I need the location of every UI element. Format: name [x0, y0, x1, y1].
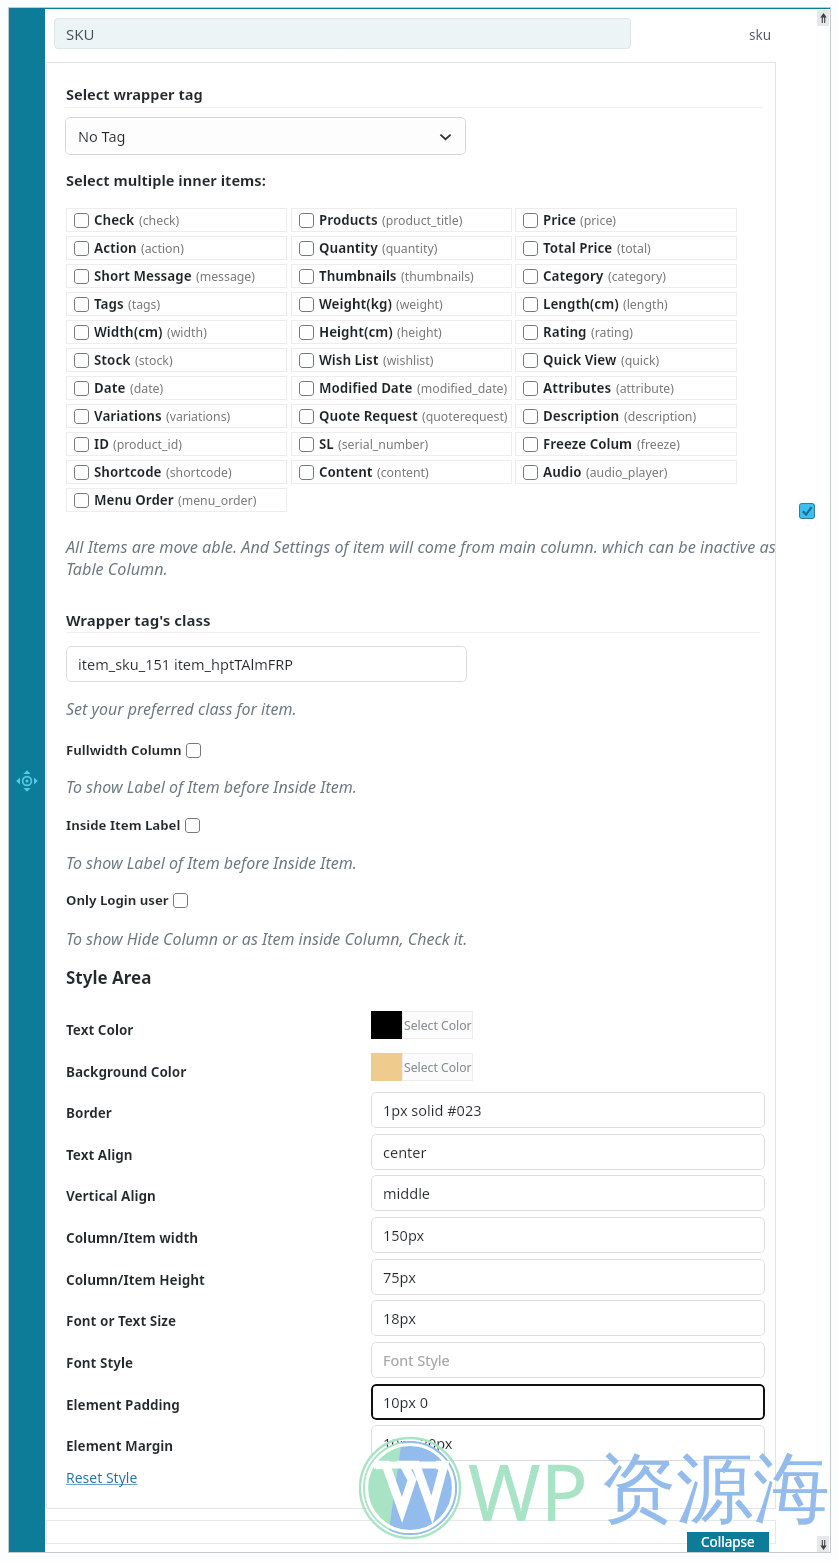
button[interactable]: Checkbox — [74, 493, 89, 508]
button[interactable]: Checkbox — [74, 269, 89, 284]
button[interactable]: Checkbox — [74, 465, 89, 480]
button[interactable]: Checkbox — [291, 460, 512, 484]
button[interactable]: center — [371, 1134, 765, 1170]
button[interactable]: Checkbox — [299, 409, 314, 424]
button[interactable]: Checkbox — [291, 264, 512, 288]
button[interactable]: Checkbox — [74, 381, 89, 396]
button[interactable]: Checkbox — [291, 432, 512, 456]
button[interactable]: SKU — [54, 18, 631, 49]
button[interactable]: Only Login user — [66, 891, 188, 909]
button[interactable]: Collapse — [687, 1532, 769, 1552]
button[interactable]: Checkbox — [523, 409, 538, 424]
button[interactable]: Checkbox — [523, 381, 538, 396]
button[interactable]: Checkbox — [173, 893, 188, 908]
button[interactable]: Checkbox — [74, 325, 89, 340]
button[interactable]: Select Color — [371, 1053, 473, 1081]
button[interactable]: Checkbox — [66, 404, 287, 428]
button[interactable]: Checkbox — [186, 743, 201, 758]
button[interactable]: 10px 0 — [371, 1384, 765, 1420]
button[interactable]: Checkbox — [299, 381, 314, 396]
button[interactable]: Checkbox — [74, 437, 89, 452]
button[interactable]: Checkbox — [515, 264, 737, 288]
button[interactable]: Checkbox — [66, 460, 287, 484]
button[interactable]: Checkbox — [66, 264, 287, 288]
button[interactable]: 18px — [371, 1300, 765, 1336]
button[interactable]: Inside Item Label — [66, 816, 200, 834]
button[interactable]: Checkbox — [299, 325, 314, 340]
button[interactable]: Select Color — [371, 1011, 473, 1039]
button[interactable]: Checkbox — [515, 208, 737, 232]
staticText: (tags) — [128, 296, 161, 313]
staticText: Text Align — [66, 1146, 133, 1164]
button[interactable]: Checkbox — [185, 818, 200, 833]
button[interactable]: Checkbox — [291, 208, 512, 232]
button[interactable]: Checkbox — [74, 409, 89, 424]
button[interactable]: Checkbox — [66, 488, 287, 512]
button[interactable]: Checkbox — [74, 353, 89, 368]
button[interactable]: Checkbox — [523, 213, 538, 228]
button[interactable]: Checkbox — [515, 432, 737, 456]
button[interactable]: Checkbox — [66, 236, 287, 260]
button[interactable]: Checkbox — [74, 241, 89, 256]
button[interactable]: Checkbox — [515, 292, 737, 316]
button[interactable]: Checkbox — [291, 236, 512, 260]
staticText: Shortcode — [94, 463, 162, 481]
button[interactable]: Font Style — [371, 1342, 765, 1378]
button[interactable]: Checkbox — [299, 269, 314, 284]
button[interactable]: 1px solid #023 — [371, 1092, 765, 1128]
button[interactable]: Checkbox — [523, 297, 538, 312]
button[interactable]: item_sku_151 item_hptTAlmFRP — [66, 646, 467, 682]
button[interactable]: Checkbox — [523, 437, 538, 452]
staticText: item_sku_151 item_hptTAlmFRP — [78, 654, 294, 674]
button[interactable]: Checkbox — [515, 348, 737, 372]
button[interactable]: Checkbox — [523, 241, 538, 256]
button[interactable]: 75px — [371, 1259, 765, 1295]
button[interactable]: Checkbox — [523, 325, 538, 340]
button[interactable]: Checkbox — [299, 465, 314, 480]
button[interactable]: Checkbox — [523, 465, 538, 480]
button[interactable]: Checkbox — [66, 320, 287, 344]
button[interactable]: Checkbox — [291, 292, 512, 316]
button[interactable]: Checkbox — [74, 213, 89, 228]
staticText: Category — [543, 267, 604, 285]
button[interactable]: Checkbox — [515, 320, 737, 344]
staticText: Menu Order — [94, 491, 174, 509]
button[interactable]: Checkbox — [515, 376, 737, 400]
button[interactable]: Checkbox — [299, 297, 314, 312]
button[interactable]: Reset Style — [66, 1468, 138, 1487]
button[interactable]: Toggle column — [799, 503, 815, 519]
staticText: 1px solid #023 — [383, 1100, 482, 1120]
staticText: Column/Item Height — [66, 1271, 205, 1289]
button[interactable]: Checkbox — [66, 208, 287, 232]
button[interactable]: No Tag — [65, 117, 466, 155]
button[interactable]: Checkbox — [299, 353, 314, 368]
button[interactable]: Checkbox — [523, 269, 538, 284]
button[interactable]: Checkbox — [515, 404, 737, 428]
button[interactable]: Checkbox — [515, 460, 737, 484]
staticText: Total Price — [543, 239, 613, 257]
staticText: SL — [319, 435, 334, 453]
button[interactable]: Checkbox — [291, 320, 512, 344]
button[interactable]: Scroll to top — [817, 10, 829, 26]
button[interactable]: middle — [371, 1175, 765, 1211]
button[interactable]: Checkbox — [291, 348, 512, 372]
button[interactable]: Checkbox — [515, 236, 737, 260]
staticText: (width) — [167, 324, 207, 341]
button[interactable]: Checkbox — [299, 437, 314, 452]
button[interactable]: 10px 20px — [371, 1425, 765, 1461]
button[interactable]: Checkbox — [66, 376, 287, 400]
button[interactable]: Checkbox — [299, 241, 314, 256]
button[interactable]: Checkbox — [299, 213, 314, 228]
button[interactable]: 150px — [371, 1217, 765, 1253]
staticText: (freeze) — [637, 436, 680, 453]
button[interactable]: Fullwidth Column — [66, 741, 201, 759]
button[interactable]: Scroll to bottom — [817, 1536, 829, 1552]
button[interactable]: Checkbox — [291, 404, 512, 428]
button[interactable]: Checkbox — [66, 348, 287, 372]
button[interactable]: Checkbox — [66, 292, 287, 316]
button[interactable]: Move item — [15, 769, 39, 793]
button[interactable]: Checkbox — [523, 353, 538, 368]
button[interactable]: Checkbox — [74, 297, 89, 312]
button[interactable]: Checkbox — [291, 376, 512, 400]
button[interactable]: Checkbox — [66, 432, 287, 456]
